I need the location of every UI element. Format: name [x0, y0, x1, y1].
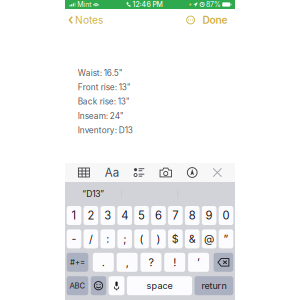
- button[interactable]: Markup: [185, 167, 200, 178]
- staticText: 12:46 PM: [132, 0, 162, 9]
- staticText: !: [173, 256, 176, 269]
- button[interactable]: &: [185, 229, 199, 248]
- staticText: ): [156, 232, 160, 245]
- button[interactable]: @: [202, 229, 216, 248]
- staticText: return: [201, 280, 226, 291]
- button[interactable]: “D13”: [65, 182, 122, 206]
- button[interactable]: 9: [202, 206, 216, 225]
- staticText: 9: [206, 209, 213, 222]
- button[interactable]: return: [194, 276, 233, 295]
- button[interactable]: Camera: [157, 167, 174, 177]
- button[interactable]: ’: [188, 253, 209, 272]
- staticText: Inventory: D13: [78, 125, 133, 135]
- button[interactable]: ?: [140, 253, 161, 272]
- staticText: ?: [148, 256, 153, 269]
- button[interactable]: Checklist: [132, 168, 147, 177]
- staticText: 8: [189, 209, 196, 222]
- staticText: /: [89, 232, 93, 245]
- button[interactable]: !: [164, 253, 185, 272]
- button[interactable]: Dictation: [109, 276, 124, 295]
- staticText: -: [71, 232, 76, 245]
- staticText: (: [140, 232, 144, 245]
- staticText: ABC: [69, 281, 85, 290]
- staticText: Notes: [75, 14, 103, 26]
- staticText: Mint: [77, 0, 91, 9]
- staticText: .: [102, 256, 105, 269]
- button[interactable]: space: [127, 276, 192, 295]
- button[interactable]: 0: [219, 206, 233, 225]
- staticText: Aa: [105, 166, 119, 179]
- staticText: 4: [121, 209, 128, 222]
- staticText: ’: [197, 256, 200, 269]
- button[interactable]: Emoji: [91, 276, 106, 295]
- staticText: Waist: 16.5": [78, 68, 123, 78]
- button[interactable]: Delete: [214, 253, 233, 272]
- staticText: 1: [71, 209, 76, 222]
- button[interactable]: (: [134, 229, 149, 248]
- staticText: Inseam: 24": [78, 111, 124, 121]
- staticText: space: [146, 280, 172, 291]
- staticText: 3: [104, 209, 111, 222]
- button[interactable]: Insert table: [76, 167, 92, 177]
- staticText: @: [204, 232, 214, 245]
- staticText: Front rise: 13": [78, 82, 131, 92]
- button[interactable]: ;: [117, 229, 132, 248]
- staticText: ”: [223, 232, 228, 245]
- staticText: $: [172, 232, 179, 245]
- staticText: #+=: [70, 258, 85, 267]
- button[interactable]: 2: [84, 206, 98, 225]
- button[interactable]: ”: [219, 229, 233, 248]
- staticText: 0: [222, 209, 229, 222]
- button[interactable]: 5: [134, 206, 149, 225]
- staticText: 5: [138, 209, 145, 222]
- button[interactable]: Done: [198, 10, 231, 30]
- staticText: :: [106, 232, 109, 245]
- button[interactable]: Format: [103, 166, 121, 179]
- staticText: Back rise: 13": [78, 97, 130, 107]
- staticText: &: [189, 232, 196, 245]
- staticText: 2: [87, 209, 94, 222]
- staticText: ,: [126, 256, 129, 269]
- button[interactable]: 7: [168, 206, 183, 225]
- button[interactable]: ABC: [67, 276, 88, 295]
- staticText: “D13”: [82, 189, 104, 199]
- button[interactable]: .: [93, 253, 114, 272]
- button[interactable]: Hide keyboard: [210, 168, 224, 177]
- button[interactable]: $: [168, 229, 183, 248]
- button[interactable]: :: [100, 229, 115, 248]
- staticText: 7: [172, 209, 178, 222]
- staticText: 6: [155, 209, 162, 222]
- button[interactable]: -: [67, 229, 81, 248]
- staticText: 87%: [206, 0, 221, 9]
- button[interactable]: 8: [185, 206, 199, 225]
- button[interactable]: 6: [151, 206, 166, 225]
- button[interactable]: 1: [67, 206, 81, 225]
- button[interactable]: #+=: [67, 253, 88, 272]
- button[interactable]: ): [151, 229, 166, 248]
- button[interactable]: ,: [117, 253, 138, 272]
- staticText: Done: [202, 14, 227, 26]
- button[interactable]: 3: [100, 206, 115, 225]
- staticText: ;: [123, 232, 126, 245]
- button[interactable]: 4: [117, 206, 132, 225]
- button[interactable]: Notes: [65, 10, 108, 30]
- button[interactable]: More options: [183, 12, 198, 28]
- button[interactable]: /: [84, 229, 98, 248]
